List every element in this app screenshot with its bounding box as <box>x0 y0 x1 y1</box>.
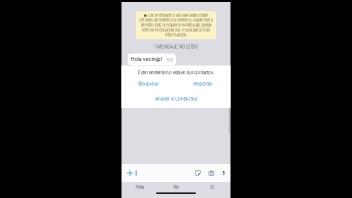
button[interactable]: Adjuntar <box>121 169 136 176</box>
button[interactable]: Bloquear <box>121 79 176 89</box>
button[interactable]: No <box>158 183 194 191</box>
button[interactable]: Reportar <box>176 79 230 89</box>
staticText: leerlos ni escucharlos. Pulsa para más <box>142 28 210 32</box>
staticText: 1 MENSAJE NO LEÍDO <box>154 44 198 49</box>
button[interactable]: Mensaje de voz <box>218 170 230 176</box>
staticText: Sí <box>210 185 214 190</box>
button[interactable]: Sí <box>194 183 230 191</box>
staticText: Reportar <box>193 81 213 87</box>
button[interactable]: Añadir a Contactos <box>121 94 230 104</box>
button[interactable]: Hola <box>121 183 158 191</box>
staticText: Hola vecin@! <box>131 56 162 62</box>
staticText: de este chat, ni siquiera WhatsApp, pued… <box>140 23 211 27</box>
button[interactable]: Cámara <box>205 170 218 175</box>
staticText: Bloquear <box>138 81 159 87</box>
staticText: Hola <box>136 185 144 190</box>
staticText: cifrados de extremo a extremo. Nadie fue… <box>139 18 213 22</box>
staticText: Este remitente no está en tus contactos. <box>138 70 214 75</box>
staticText: 11:32 <box>166 58 173 62</box>
staticText: Añadir a Contactos <box>155 96 197 102</box>
staticText: No <box>173 185 178 190</box>
button[interactable]: Stickers <box>191 170 205 176</box>
button[interactable]: Los mensajes y las llamadas están <box>136 11 216 39</box>
staticText: Los mensajes y las llamadas están <box>148 13 208 18</box>
staticText: información. <box>165 33 187 37</box>
